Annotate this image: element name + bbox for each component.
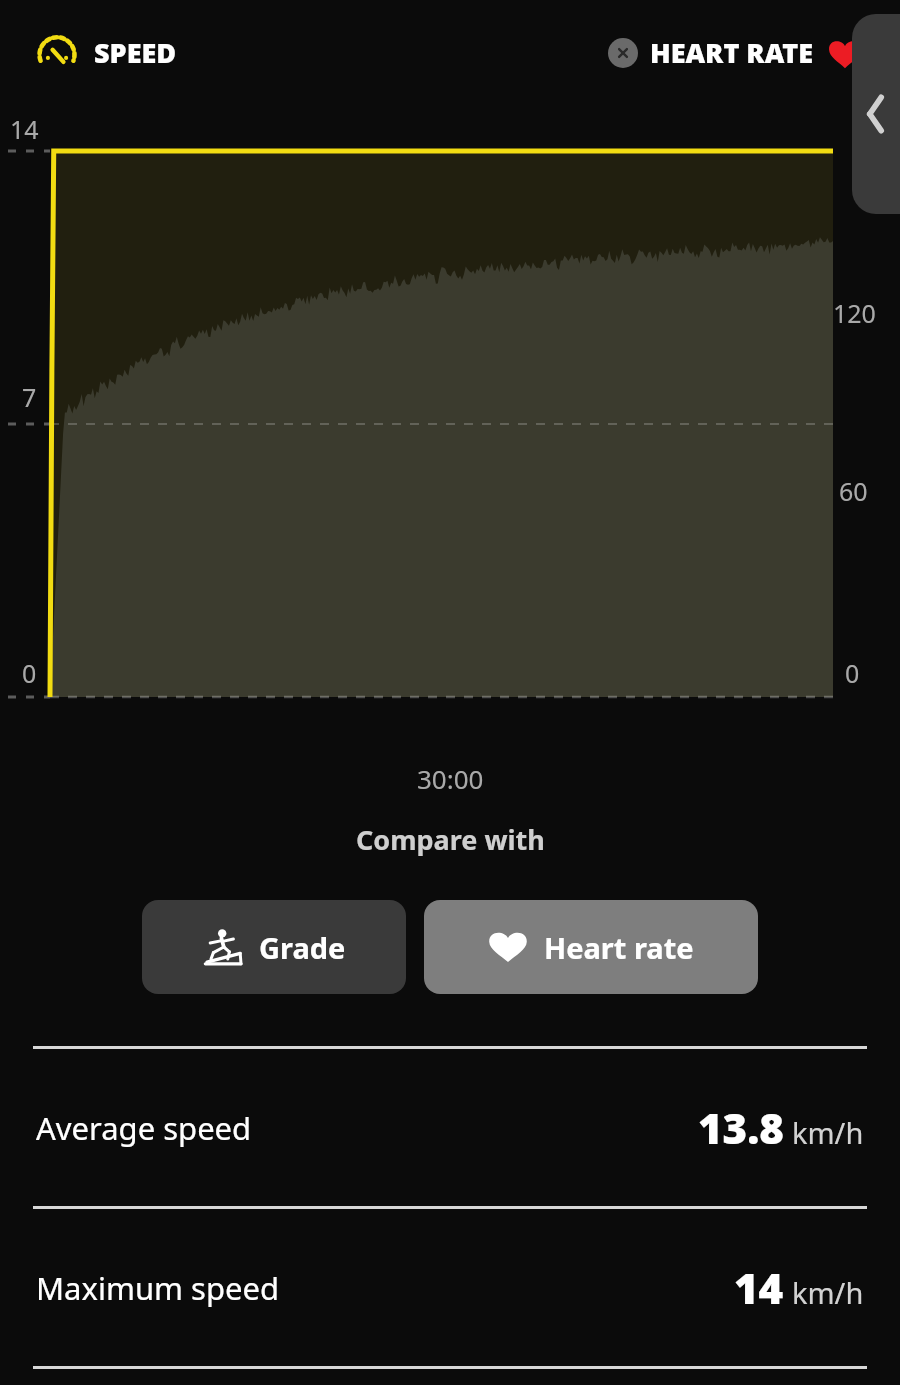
- staticText: HEART RATE: [650, 34, 814, 71]
- staticText: Compare with: [356, 821, 545, 858]
- button[interactable]: Open panel: [852, 14, 900, 214]
- staticText: Maximum speed: [36, 1267, 280, 1309]
- staticText: 7: [22, 380, 37, 414]
- staticText: 13.8: [698, 1099, 784, 1156]
- staticText: 14: [734, 1259, 784, 1316]
- staticText: 14: [10, 112, 39, 146]
- staticText: 60: [839, 474, 868, 508]
- staticText: km/h: [792, 1273, 864, 1312]
- button[interactable]: Remove heart rate: [608, 38, 638, 68]
- staticText: 0: [845, 656, 860, 690]
- staticText: 120: [833, 296, 876, 330]
- button[interactable]: Maximum speed: [0, 1209, 900, 1366]
- staticText: 30:00: [417, 761, 484, 796]
- staticText: Heart rate: [544, 928, 694, 967]
- button[interactable]: Heart rate: [424, 900, 758, 994]
- other: Heart rate: [828, 36, 862, 70]
- staticText: Average speed: [36, 1107, 252, 1149]
- other: Speed: [34, 29, 80, 75]
- staticText: 0: [22, 656, 37, 690]
- staticText: Grade: [259, 928, 346, 967]
- staticText: SPEED: [94, 34, 177, 71]
- button[interactable]: Grade: [142, 900, 406, 994]
- button[interactable]: Average speed: [0, 1049, 900, 1206]
- staticText: km/h: [792, 1113, 864, 1152]
- button[interactable]: Speed: [30, 25, 181, 79]
